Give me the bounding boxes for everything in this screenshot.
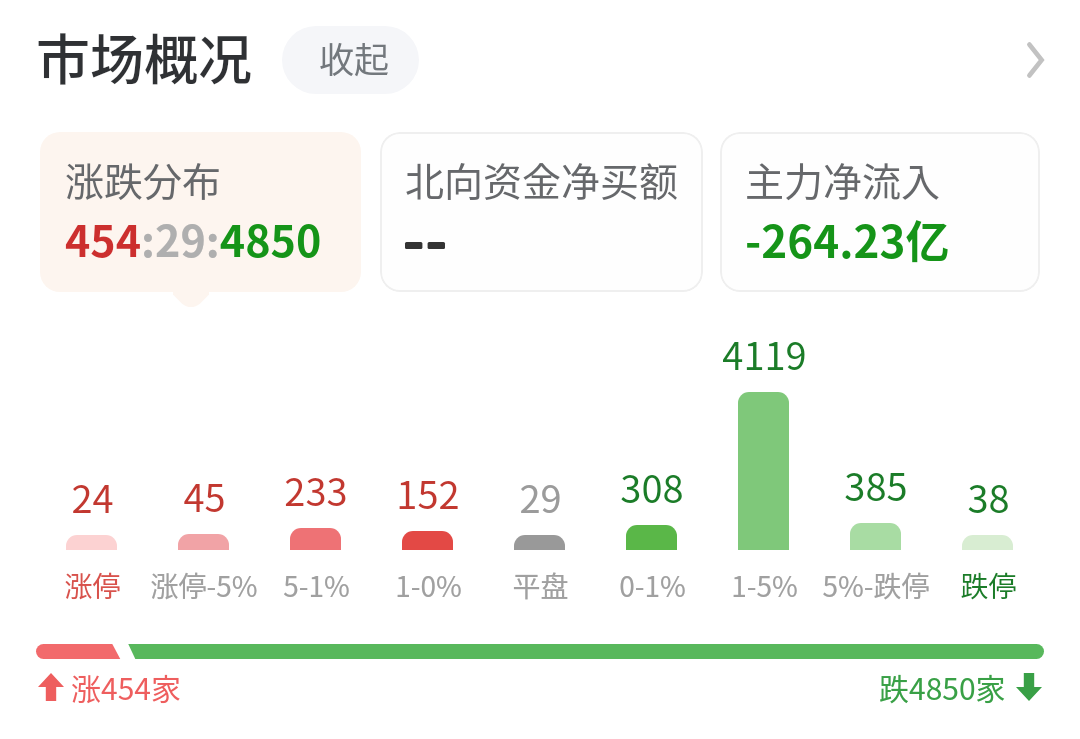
staticText: 涨停: [64, 565, 121, 606]
button[interactable]: 5%-跌停 385: [819, 330, 931, 610]
button[interactable]: 平盘 29: [483, 330, 595, 610]
button[interactable]: 跌4850家: [879, 665, 1042, 708]
staticText: 45: [183, 468, 226, 523]
staticText: 平盘: [512, 565, 569, 606]
button[interactable]: 市场概况: [36, 17, 252, 95]
button[interactable]: 查看市场概况详情: [997, 25, 1067, 95]
staticText: 5%-跌停: [822, 565, 930, 606]
staticText: 24: [71, 469, 114, 524]
staticText: 233: [284, 462, 348, 517]
button[interactable]: 5-1% 233: [259, 330, 371, 610]
button[interactable]: 涨454家: [38, 665, 181, 708]
button[interactable]: 跌停 38: [931, 330, 1043, 610]
button[interactable]: 主力净流入: [720, 132, 1040, 292]
button[interactable]: 0-1% 308: [595, 330, 707, 610]
staticText: 涨跌分布: [65, 151, 222, 207]
button[interactable]: 涨跌分布: [40, 132, 361, 292]
button[interactable]: 涨停-5% 45: [147, 330, 259, 610]
staticText: 308: [620, 459, 684, 514]
staticText: 152: [396, 465, 460, 520]
button[interactable]: 北向资金净买额: [380, 132, 703, 292]
staticText: 跌4850家: [879, 665, 1006, 708]
staticText: 跌停: [960, 565, 1017, 606]
staticText: 4119: [722, 326, 807, 381]
staticText: 涨停-5%: [150, 565, 258, 606]
staticText: 454:29:4850: [65, 207, 322, 269]
button[interactable]: 1-5% 4119: [707, 330, 819, 610]
staticText: 涨454家: [71, 665, 181, 708]
button[interactable]: 收起: [282, 26, 419, 94]
staticText: 北向资金净买额: [405, 151, 679, 207]
button[interactable]: 涨停 24: [35, 330, 147, 610]
staticText: 0-1%: [619, 565, 686, 606]
staticText: 1-5%: [731, 565, 798, 606]
staticText: 主力净流入: [745, 151, 941, 207]
staticText: 29: [519, 469, 562, 524]
button[interactable]: 1-0% 152: [371, 330, 483, 610]
staticText: 38: [967, 469, 1010, 524]
staticText: 1-0%: [395, 565, 462, 606]
staticText: 市场概况: [36, 17, 252, 95]
staticText: -264.23亿: [745, 207, 950, 271]
staticText: 5-1%: [283, 565, 350, 606]
staticText: 385: [844, 457, 908, 512]
staticText: 收起: [319, 32, 390, 83]
